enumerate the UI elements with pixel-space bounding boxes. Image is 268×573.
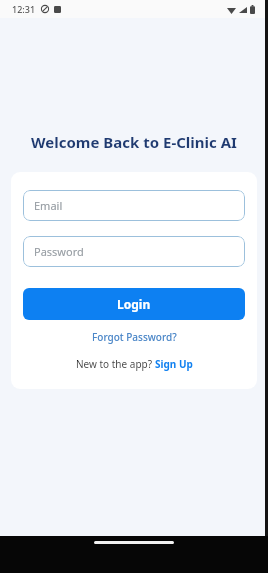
button[interactable]: Login	[23, 288, 245, 320]
button[interactable]: Forgot Password?	[23, 328, 245, 346]
button[interactable]: Email	[23, 190, 245, 221]
staticText: Password	[34, 244, 84, 259]
button[interactable]: Sign Up	[155, 357, 193, 371]
staticText: Sign Up	[155, 357, 193, 371]
staticText: Email	[34, 198, 63, 213]
staticText: Forgot Password?	[92, 330, 177, 344]
other: Home gesture	[94, 541, 174, 544]
button[interactable]: Password	[23, 236, 245, 267]
staticText: 12:31	[12, 3, 36, 15]
staticText: Welcome Back to E-Clinic AI	[26, 132, 242, 152]
staticText: Login	[117, 296, 151, 312]
staticText: New to the app?	[76, 357, 155, 371]
